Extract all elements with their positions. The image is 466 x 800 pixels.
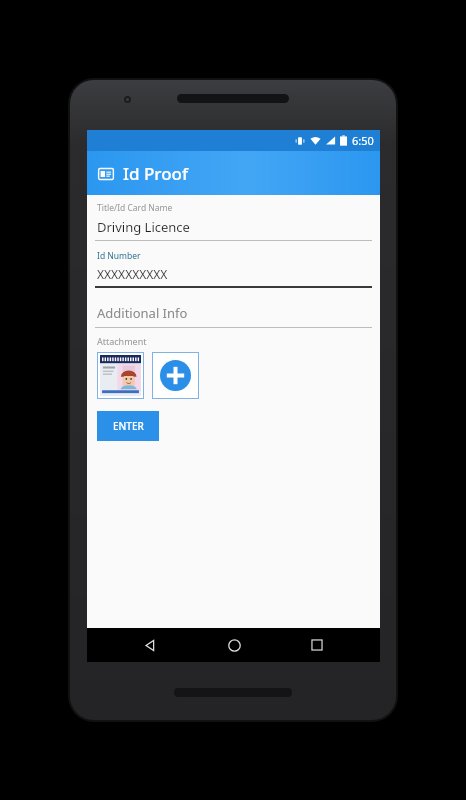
button[interactable]: Home [214, 628, 254, 662]
staticText: ENTER [113, 419, 144, 433]
staticText: Id Proof [123, 162, 189, 185]
staticText: Title/Id Card Name [97, 202, 173, 214]
button[interactable]: Id Number [95, 250, 372, 288]
staticText: Attachment [97, 335, 147, 347]
staticText: 6:50 [352, 133, 374, 148]
other: Id card [98, 166, 114, 182]
button[interactable]: ENTER [97, 411, 159, 441]
button[interactable]: Add attachment [152, 352, 199, 399]
button[interactable]: Additional Info [95, 304, 372, 328]
button[interactable]: Recent apps [297, 628, 337, 662]
staticText: Id Number [97, 250, 141, 262]
button[interactable]: Title/Id Card Name [95, 202, 372, 241]
button[interactable]: Driving Licence attachment [100, 355, 141, 396]
staticText: Additional Info [97, 304, 188, 322]
staticText: Driving Licence [97, 218, 190, 236]
button[interactable]: Back [130, 628, 170, 662]
staticText: XXXXXXXXXX [97, 266, 168, 282]
